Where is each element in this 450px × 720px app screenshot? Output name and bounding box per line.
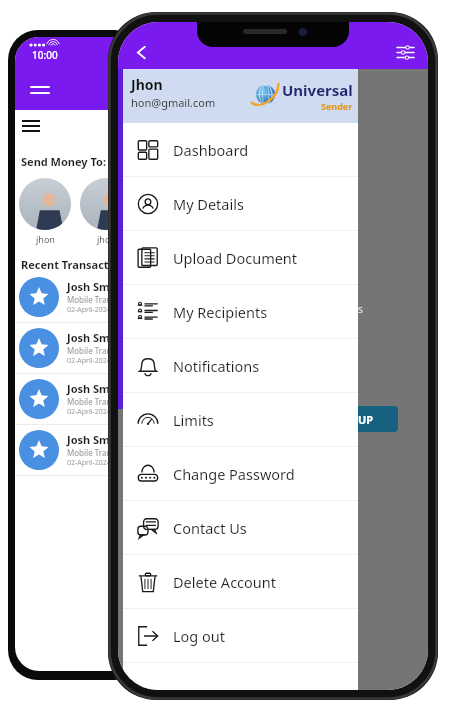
staticText: Josh Sm <box>67 381 110 396</box>
button[interactable]: Log out <box>123 609 358 662</box>
staticText: 02-April-2024 <box>67 356 111 366</box>
staticText: Limits <box>173 410 214 430</box>
staticText: Josh Sm <box>67 432 110 447</box>
staticText: Mobile Tran <box>67 396 112 407</box>
button[interactable]: Back <box>124 35 158 69</box>
staticText: 02-April-2024 <box>67 458 111 468</box>
staticText: Jhon <box>131 75 163 94</box>
staticText: Notifications <box>173 356 260 376</box>
staticText: Sender <box>321 100 353 112</box>
button[interactable]: l <box>118 69 428 690</box>
staticText: My Details <box>173 194 244 214</box>
button[interactable]: Delete Account <box>123 555 358 608</box>
staticText: Universal <box>282 80 353 100</box>
staticText: Josh Sm <box>67 279 110 294</box>
staticText: Contact Us <box>173 518 247 538</box>
staticText: Tr <box>124 78 142 104</box>
staticText: My Recipients <box>173 302 268 322</box>
staticText: e rates essly e <box>328 301 364 346</box>
staticText: 02-April-2024 <box>67 305 111 315</box>
button[interactable]: My Recipients <box>123 285 358 338</box>
staticText: Send <box>110 490 140 506</box>
staticText: jhon <box>97 233 116 245</box>
staticText: hon@gmail.com <box>131 95 216 110</box>
staticText: Upload Document <box>173 248 298 268</box>
staticText: 02-April-2024 <box>67 407 111 417</box>
staticText: Mobile Tran <box>67 294 112 305</box>
button[interactable]: Notifications <box>123 339 358 392</box>
staticText: Mobile Tran <box>67 447 112 458</box>
staticText: jhon <box>36 233 55 245</box>
staticText: UP <box>358 412 374 427</box>
staticText: Send Money To: <box>21 154 107 169</box>
staticText: 10:00 <box>32 48 58 62</box>
button[interactable]: Contact Us <box>123 501 358 554</box>
staticText: Mobile Tran <box>67 345 112 356</box>
staticText: Dashboard <box>173 140 249 160</box>
staticText: Delete Account <box>173 572 276 592</box>
button[interactable]: Limits <box>123 393 358 446</box>
staticText: Log out <box>173 626 226 646</box>
button[interactable]: Upload Document <box>123 231 358 284</box>
button[interactable]: Dashboard <box>123 123 358 176</box>
button[interactable]: Settings <box>388 35 422 69</box>
staticText: Recent Transactions <box>21 257 132 272</box>
button[interactable]: Change Password <box>123 447 358 500</box>
button[interactable]: My Details <box>123 177 358 230</box>
staticText: Josh Sm <box>67 330 110 345</box>
staticText: Change Password <box>173 464 295 484</box>
